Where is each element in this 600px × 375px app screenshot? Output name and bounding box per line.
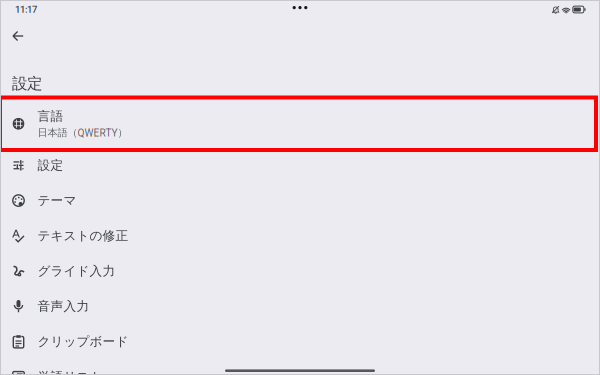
staticText: 設定 — [37, 157, 63, 173]
button[interactable]: テキストの修正 — [0, 218, 600, 253]
button[interactable]: Back — [2, 23, 34, 49]
staticText: 日本語（QWERTY） — [37, 126, 127, 139]
button[interactable]: クリップボード — [0, 324, 600, 359]
button[interactable]: 音声入力 — [0, 289, 600, 324]
staticText: 音声入力 — [37, 298, 89, 314]
staticText: 単語リスト — [37, 369, 102, 375]
button[interactable]: グライド入力 — [0, 253, 600, 289]
staticText: 設定 — [12, 74, 42, 93]
button[interactable]: 設定 — [0, 148, 600, 183]
staticText: グライド入力 — [37, 263, 115, 279]
staticText: クリップボード — [37, 333, 128, 349]
button[interactable]: テーマ — [0, 183, 600, 218]
staticText: 11:17 — [15, 4, 37, 15]
staticText: テーマ — [37, 193, 76, 209]
staticText: 言語 — [37, 108, 63, 124]
staticText: テキストの修正 — [37, 228, 128, 244]
button[interactable]: 単語リスト — [0, 359, 600, 375]
button[interactable]: 言語 — [0, 100, 600, 148]
